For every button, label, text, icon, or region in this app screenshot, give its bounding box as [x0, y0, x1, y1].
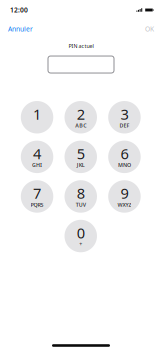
staticText: JKL [77, 161, 85, 169]
button[interactable]: 3 [108, 101, 141, 133]
staticText: 7 [33, 183, 41, 203]
button[interactable]: OK [142, 22, 157, 36]
button[interactable]: 5 [64, 141, 97, 173]
staticText: 0 [77, 223, 85, 242]
button[interactable]: Annuler [5, 22, 36, 36]
button[interactable]: 7 [21, 180, 53, 213]
staticText: OK [145, 25, 154, 33]
button[interactable]: 6 [108, 141, 141, 173]
staticText: 9 [120, 183, 128, 203]
button[interactable]: 1 [21, 101, 53, 133]
staticText: + [79, 241, 82, 248]
staticText: 2 [77, 104, 85, 124]
button[interactable]: 4 [21, 141, 53, 173]
staticText: Annuler [8, 25, 33, 33]
button[interactable]: 8 [64, 180, 97, 213]
staticText: GHI [32, 161, 42, 169]
staticText: 6 [120, 144, 128, 163]
button[interactable]: 0 [64, 220, 97, 252]
staticText: 5 [77, 144, 85, 163]
button[interactable]: 2 [64, 101, 97, 133]
staticText: 4 [33, 144, 41, 163]
staticText: 3 [120, 104, 128, 124]
staticText: ABC [75, 122, 86, 129]
button[interactable]: 9 [108, 180, 141, 213]
staticText: 8 [77, 183, 85, 203]
staticText: 1 [33, 104, 41, 124]
staticText: MNO [118, 161, 131, 169]
staticText: 12:00 [10, 6, 28, 14]
staticText: TUV [76, 201, 86, 208]
staticText: PQRS [31, 201, 44, 208]
staticText: WXYZ [117, 201, 131, 208]
staticText: PIN actuel [68, 42, 93, 50]
staticText: DEF [119, 122, 129, 129]
